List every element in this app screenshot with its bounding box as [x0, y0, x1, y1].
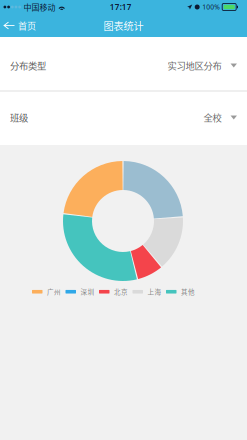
staticText: 其他 — [181, 287, 195, 296]
staticText: 北京 — [114, 287, 128, 296]
staticText: 班级 — [10, 111, 28, 124]
staticText: 上海 — [147, 287, 161, 296]
staticText: 17:17 — [110, 2, 132, 12]
button[interactable]: 首页 — [0, 14, 40, 37]
staticText: 分布类型 — [10, 59, 46, 72]
staticText: 深圳 — [80, 287, 94, 296]
staticText: 实习地区分布 — [167, 59, 221, 72]
staticText: 中国移动 — [24, 1, 56, 13]
staticText: 首页 — [18, 19, 36, 32]
button[interactable]: 分布类型 — [0, 37, 247, 90]
staticText: 全校 — [203, 111, 221, 124]
staticText: 图表统计 — [103, 18, 143, 33]
button[interactable]: 班级 — [0, 92, 247, 145]
staticText: 广州 — [47, 287, 61, 296]
staticText: 100% — [202, 3, 220, 11]
